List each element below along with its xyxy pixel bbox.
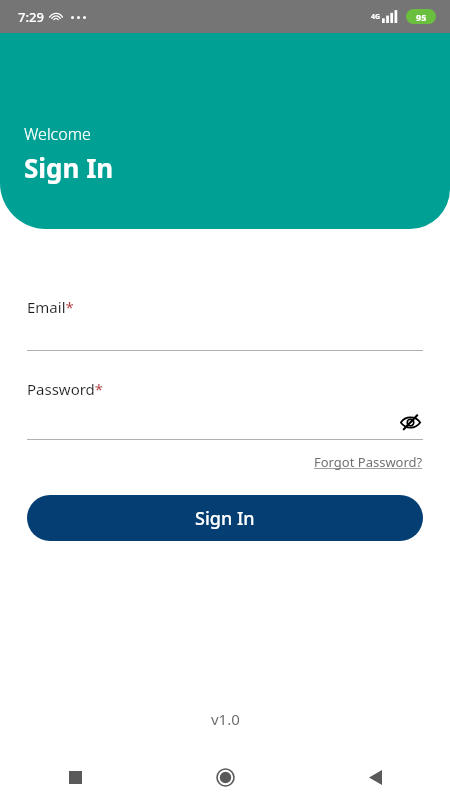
staticText: 4G <box>371 12 381 22</box>
button[interactable]: Recents <box>0 755 150 800</box>
button[interactable]: Home <box>150 755 300 800</box>
staticText: Sign In <box>195 506 255 531</box>
staticText: Email* <box>27 297 74 317</box>
staticText: Forgot Password? <box>314 453 423 471</box>
button[interactable]: Show password <box>397 412 423 433</box>
staticText: v1.0 <box>211 709 240 729</box>
button[interactable]: Forgot Password? <box>314 453 423 471</box>
staticText: Sign In <box>24 150 114 185</box>
staticText: 7:29 <box>18 8 44 26</box>
button[interactable]: Sign In <box>27 495 423 541</box>
staticText: 95 <box>416 11 427 23</box>
button[interactable]: Back <box>300 755 450 800</box>
staticText: Password* <box>27 379 104 399</box>
staticText: Welcome <box>24 123 91 145</box>
